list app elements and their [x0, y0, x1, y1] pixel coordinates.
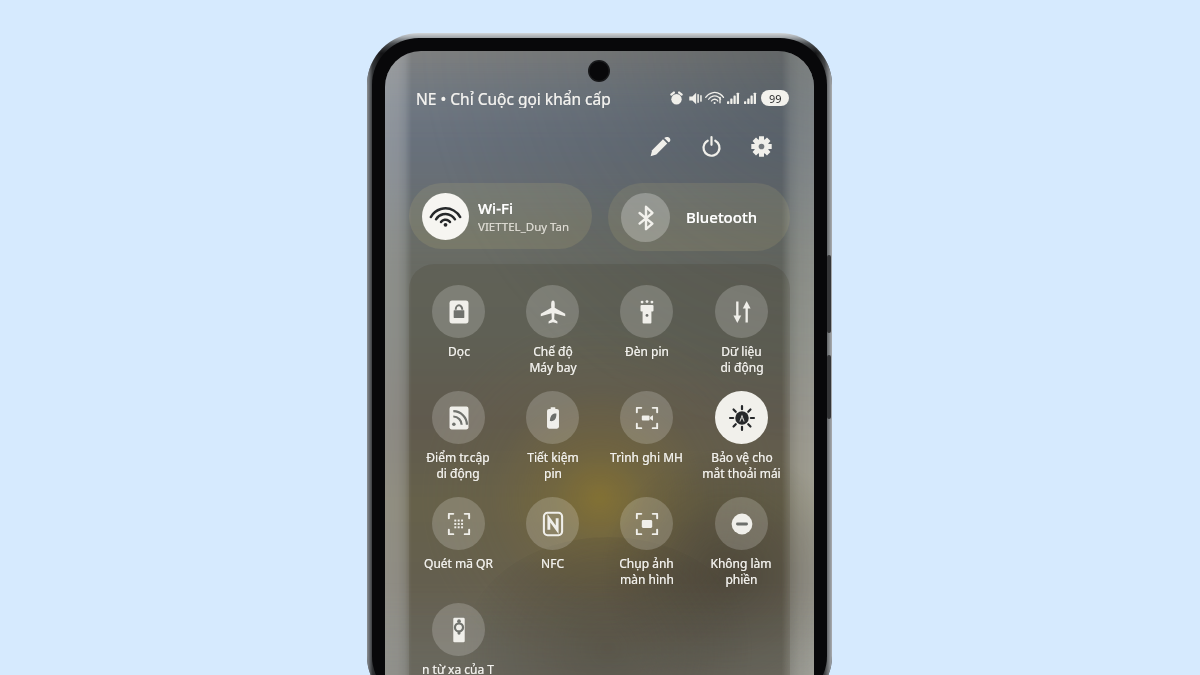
button[interactable]: n từ xa của T — [411, 603, 505, 675]
button[interactable]: Wi-Fi — [409, 183, 592, 249]
staticText: di động — [436, 465, 480, 481]
staticText: Không làm — [710, 555, 772, 571]
button[interactable]: Không làm — [694, 497, 788, 593]
button[interactable]: Trình ghi MH — [599, 391, 693, 487]
staticText: Dữ liệu — [721, 343, 762, 359]
button[interactable]: NFC — [505, 497, 599, 593]
button[interactable]: Điểm tr.cập — [411, 391, 505, 487]
staticText: Máy bay — [529, 359, 577, 375]
staticText: Đèn pin — [625, 343, 669, 359]
button[interactable]: Chụp ảnh — [599, 497, 693, 593]
button[interactable]: Bảo vệ cho — [694, 391, 788, 487]
button[interactable]: Quét mã QR — [411, 497, 505, 593]
staticText: phiền — [725, 571, 758, 587]
staticText: Dọc — [448, 343, 470, 359]
button[interactable]: Settings — [741, 126, 781, 166]
staticText: NE • Chỉ Cuộc gọi khẩn cấp — [416, 88, 611, 108]
button[interactable]: Power — [691, 126, 731, 166]
button[interactable]: Chế độ — [505, 285, 599, 381]
staticText: Chụp ảnh — [619, 555, 674, 571]
button[interactable]: Dữ liệu — [694, 285, 788, 381]
staticText: Điểm tr.cập — [426, 449, 490, 465]
staticText: 99 — [769, 91, 782, 106]
button[interactable]: Edit — [640, 126, 680, 166]
staticText: màn hình — [620, 571, 674, 587]
staticText: di động — [720, 359, 764, 375]
staticText: Chế độ — [533, 343, 573, 359]
staticText: VIETTEL_Duy Tan — [478, 219, 570, 235]
button[interactable]: Bluetooth — [608, 183, 790, 251]
staticText: Wi-Fi — [478, 198, 513, 218]
staticText: Quét mã QR — [424, 555, 493, 571]
staticText: Trình ghi MH — [610, 449, 683, 465]
staticText: Tiết kiệm — [527, 449, 579, 465]
staticText: NFC — [541, 555, 564, 571]
staticText: mắt thoải mái — [702, 465, 781, 481]
staticText: Bảo vệ cho — [711, 449, 773, 465]
button[interactable]: Tiết kiệm — [505, 391, 599, 487]
button[interactable]: Đèn pin — [599, 285, 693, 381]
staticText: pin — [544, 465, 562, 481]
button[interactable]: Dọc — [411, 285, 505, 381]
staticText: Bluetooth — [686, 207, 758, 227]
staticText: n từ xa của T — [422, 661, 494, 675]
